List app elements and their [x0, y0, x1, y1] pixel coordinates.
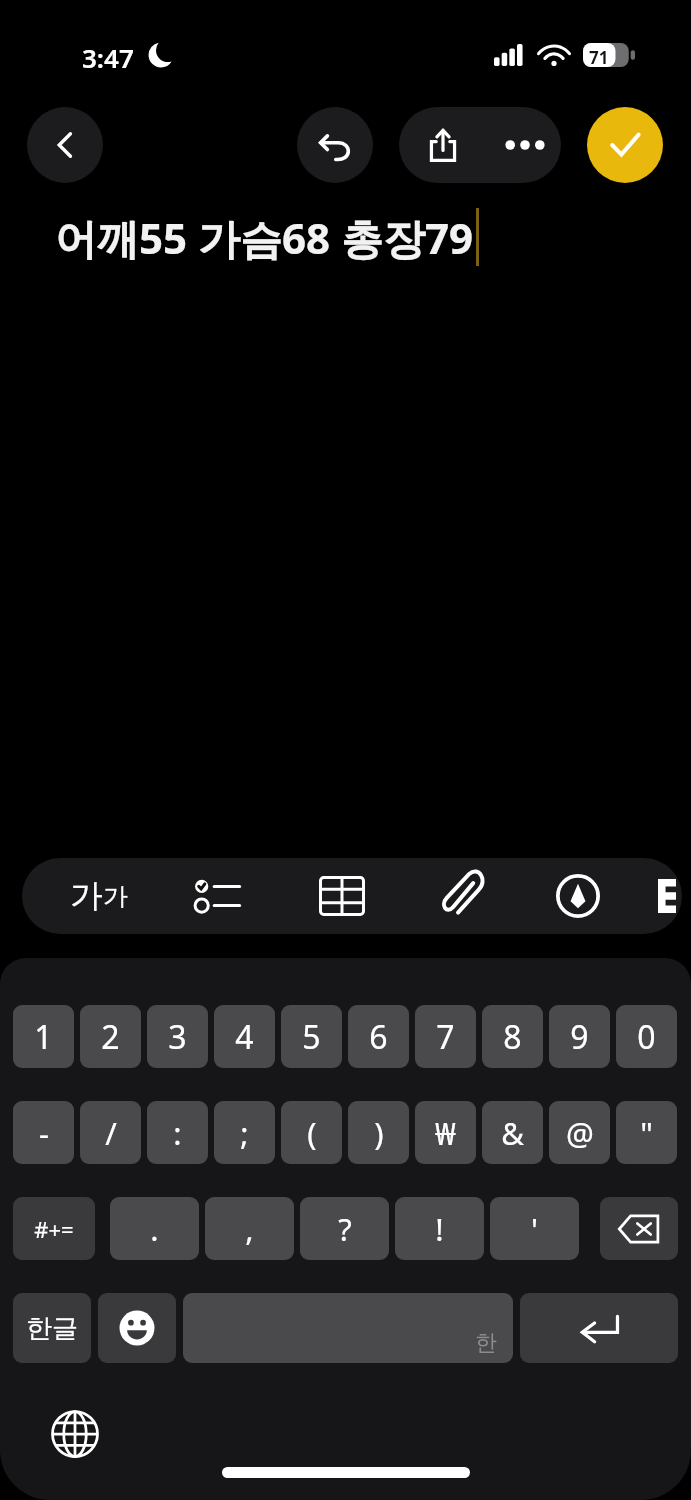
staticText: ' — [531, 1208, 538, 1250]
button[interactable]: @ — [549, 1101, 610, 1164]
button[interactable]: ₩ — [415, 1101, 476, 1164]
button[interactable]: 7 — [415, 1005, 476, 1068]
staticText: . — [150, 1208, 159, 1250]
staticText: & — [501, 1112, 524, 1154]
staticText: - — [39, 1112, 49, 1154]
button[interactable]: : — [147, 1101, 208, 1164]
staticText: 7 — [436, 1015, 455, 1059]
staticText: ; — [240, 1112, 249, 1154]
button[interactable]: More tools — [642, 858, 682, 934]
staticText: 한 — [475, 1329, 497, 1357]
button[interactable]: ; — [214, 1101, 275, 1164]
staticText: @ — [566, 1112, 594, 1154]
staticText: / — [105, 1112, 117, 1154]
button[interactable]: Emoji — [98, 1293, 176, 1363]
staticText: 한글 — [26, 1312, 78, 1345]
staticText: 8 — [503, 1015, 522, 1059]
button[interactable]: Back — [27, 107, 103, 183]
button[interactable]: Markup — [530, 858, 626, 934]
staticText: " — [640, 1112, 653, 1154]
staticText: 1 — [34, 1015, 53, 1059]
staticText: ! — [435, 1208, 444, 1250]
button[interactable]: 2 — [80, 1005, 141, 1068]
button[interactable]: / — [80, 1101, 141, 1164]
staticText: 어깨55 가슴68 총장79 — [55, 209, 473, 266]
button[interactable]: 한 — [183, 1293, 513, 1363]
button[interactable]: 3 — [147, 1005, 208, 1068]
button[interactable]: #+= — [13, 1197, 95, 1260]
button[interactable]: Undo — [297, 107, 373, 183]
staticText: 4 — [235, 1015, 254, 1059]
button[interactable]: ( — [281, 1101, 342, 1164]
button[interactable]: ! — [395, 1197, 484, 1260]
staticText: ₩ — [435, 1112, 456, 1154]
staticText: ) — [374, 1112, 384, 1154]
button[interactable]: & — [482, 1101, 543, 1164]
button[interactable]: 8 — [482, 1005, 543, 1068]
button[interactable]: Share — [407, 107, 479, 183]
button[interactable]: Change keyboard — [42, 1401, 108, 1467]
button[interactable]: 9 — [549, 1005, 610, 1068]
staticText: #+= — [34, 1214, 74, 1244]
button[interactable]: 가 — [44, 858, 154, 934]
button[interactable]: Table — [294, 858, 390, 934]
staticText: : — [173, 1112, 182, 1154]
button[interactable]: Checklist — [170, 858, 266, 934]
staticText: 3:47 — [82, 40, 134, 75]
staticText: 2 — [101, 1015, 120, 1059]
button[interactable]: 4 — [214, 1005, 275, 1068]
button[interactable]: 1 — [13, 1005, 74, 1068]
staticText: , — [245, 1208, 254, 1250]
button[interactable]: ' — [490, 1197, 579, 1260]
button[interactable]: - — [13, 1101, 74, 1164]
staticText: ? — [338, 1208, 352, 1250]
button[interactable]: Attach — [414, 858, 510, 934]
staticText: ( — [307, 1112, 317, 1154]
staticText: 0 — [637, 1015, 656, 1059]
button[interactable]: Done — [587, 107, 663, 183]
button[interactable]: , — [205, 1197, 294, 1260]
staticText: 9 — [570, 1015, 589, 1059]
button[interactable]: Backspace — [600, 1197, 678, 1260]
button[interactable]: . — [110, 1197, 199, 1260]
staticText: 3 — [168, 1015, 187, 1059]
staticText: 가 — [103, 881, 128, 912]
button[interactable]: 6 — [348, 1005, 409, 1068]
button[interactable]: 0 — [616, 1005, 677, 1068]
button[interactable]: 5 — [281, 1005, 342, 1068]
button[interactable]: ? — [300, 1197, 389, 1260]
staticText: 6 — [369, 1015, 388, 1059]
button[interactable]: ) — [348, 1101, 409, 1164]
button[interactable]: 한글 — [13, 1293, 91, 1363]
staticText: 5 — [302, 1015, 321, 1059]
staticText: 가 — [70, 875, 103, 917]
button[interactable]: " — [616, 1101, 677, 1164]
staticText: 71 — [589, 46, 609, 69]
button[interactable]: Return — [520, 1293, 678, 1363]
button[interactable]: More options — [489, 107, 561, 183]
